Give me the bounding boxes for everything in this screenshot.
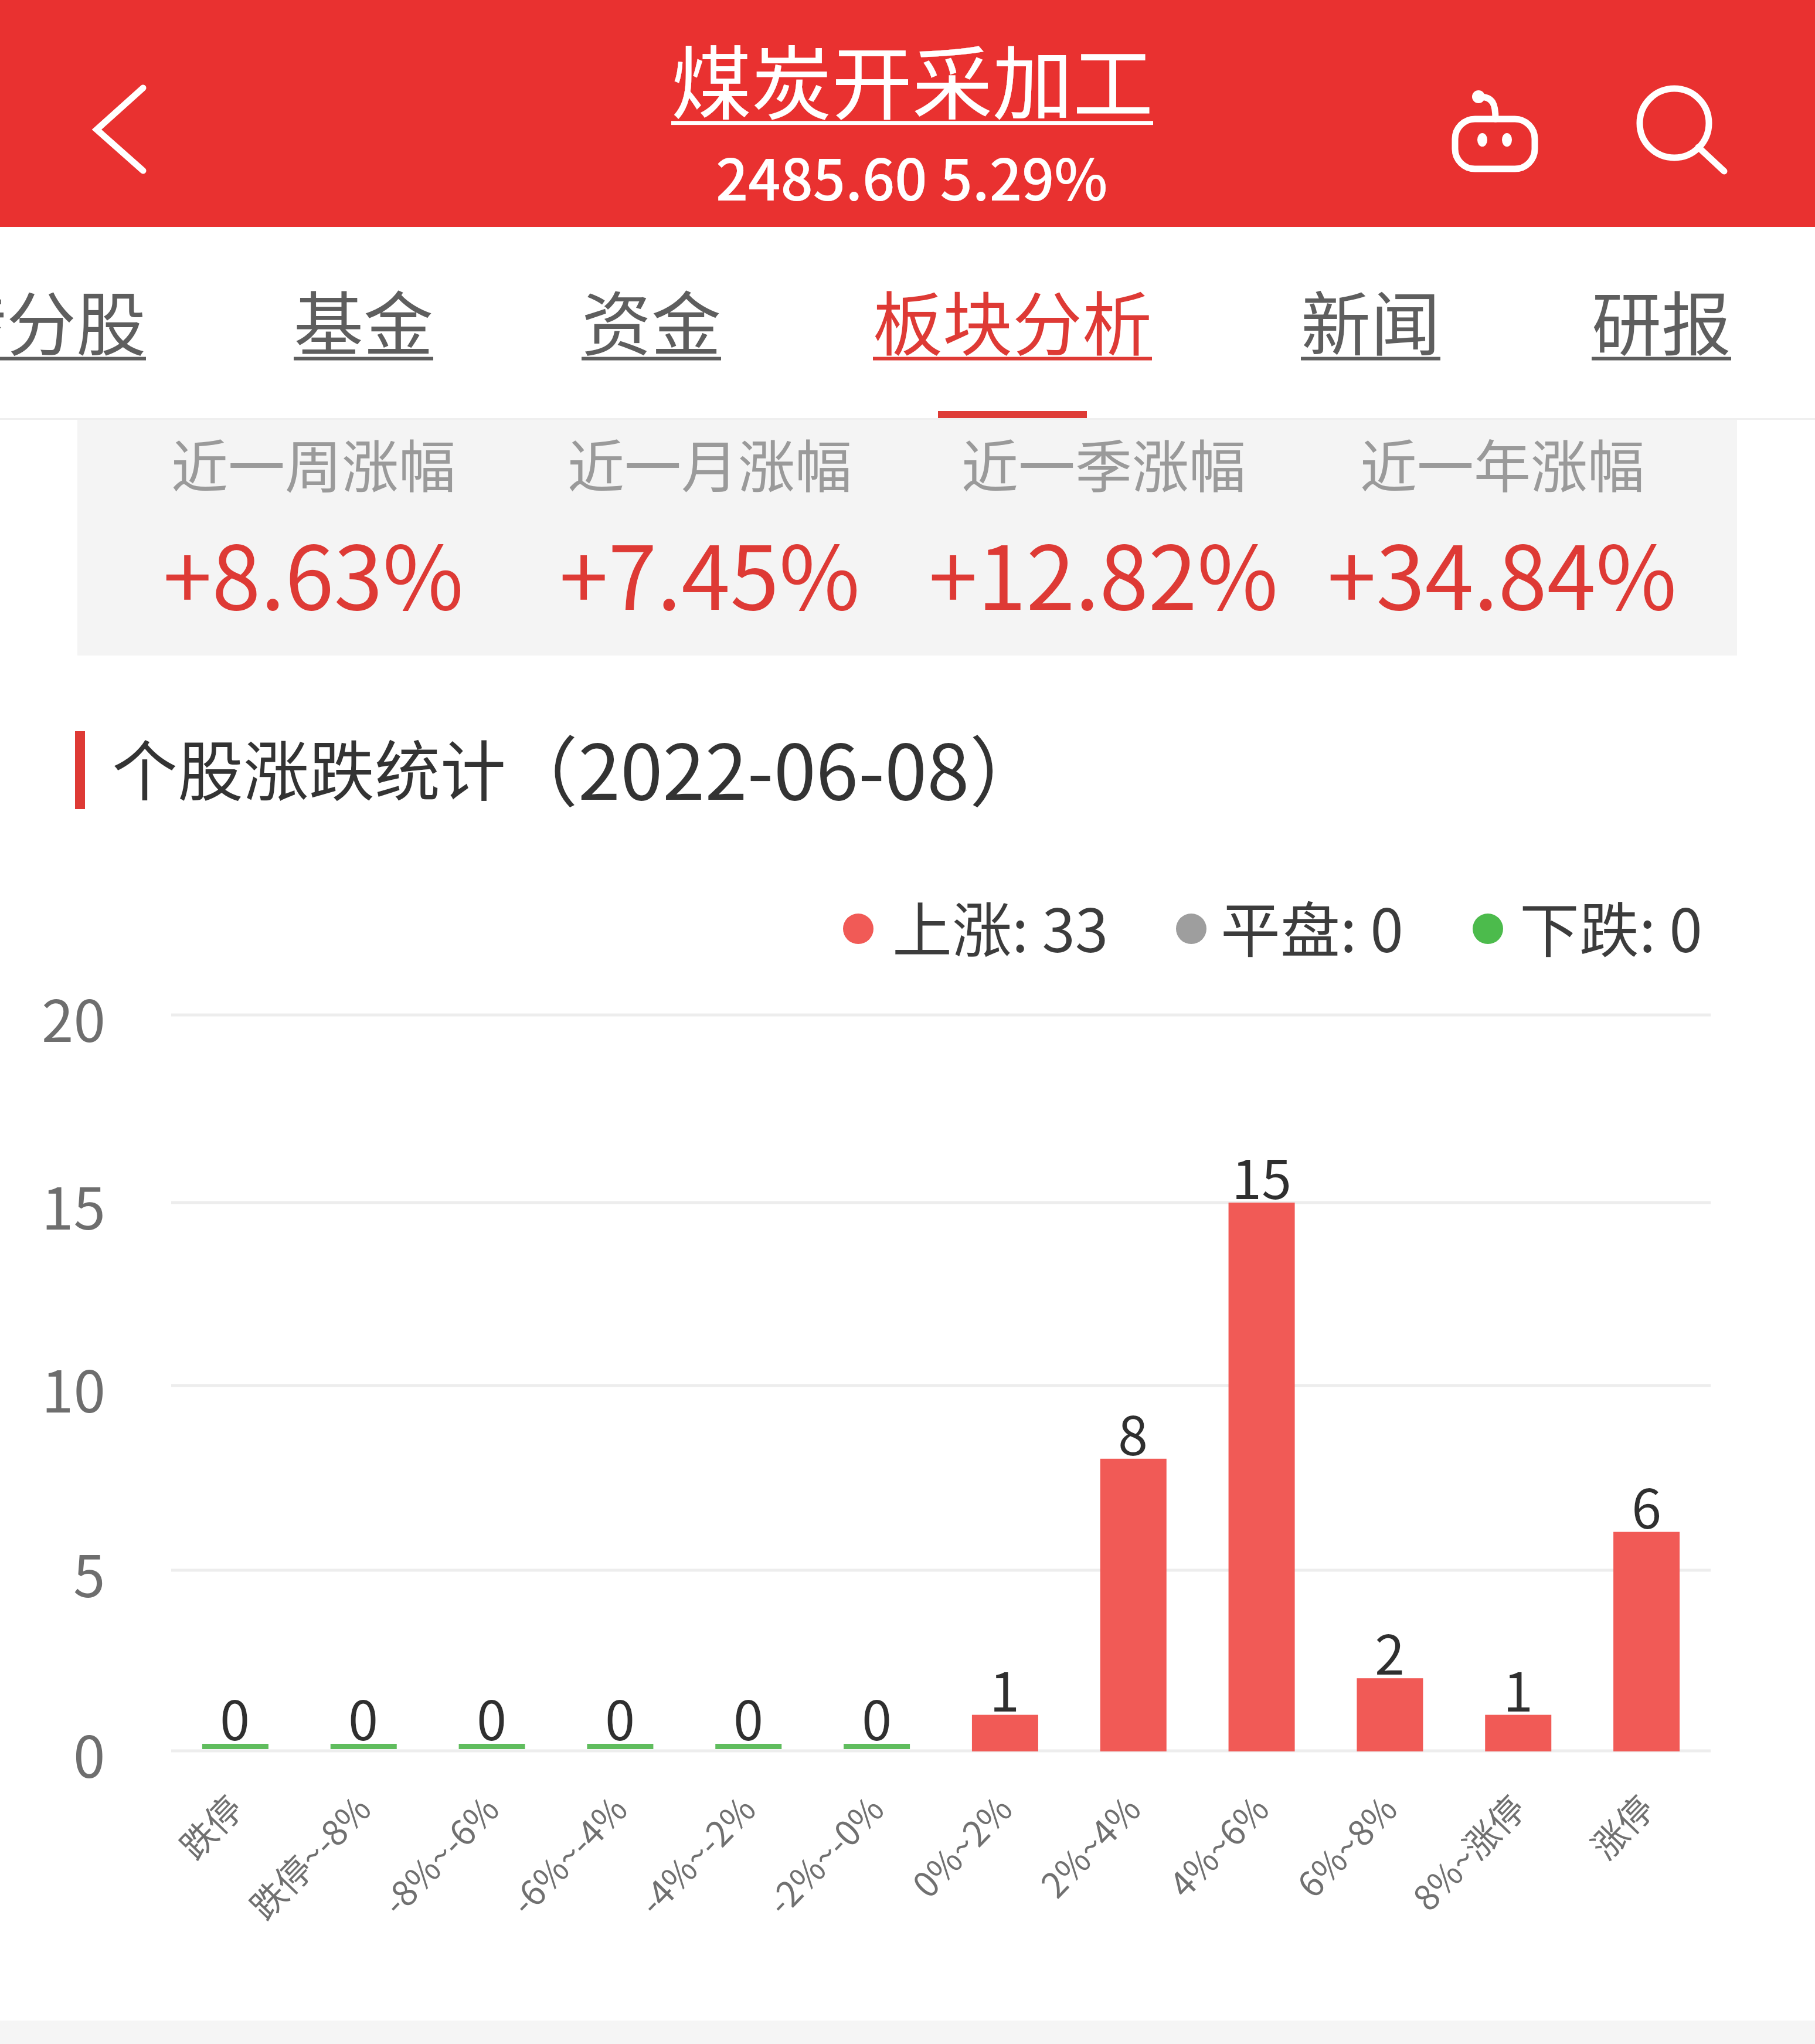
staticText: 1 xyxy=(990,1649,1020,1727)
staticText: 15 xyxy=(1232,1136,1292,1214)
staticText: 新闻 xyxy=(1301,269,1440,370)
button[interactable]: 新闻 xyxy=(1289,269,1453,422)
staticText: 0 xyxy=(605,1678,635,1756)
staticText: 近一年涨幅 xyxy=(1360,421,1644,503)
button[interactable]: AI assistant xyxy=(1439,76,1551,188)
staticText: （2022-06-08） xyxy=(502,711,1046,821)
staticText: +34.84% xyxy=(1327,508,1677,635)
button[interactable]: Back xyxy=(74,76,174,187)
staticText: 煤炭开采加工 xyxy=(671,20,1154,136)
staticText: +12.82% xyxy=(929,508,1279,635)
button[interactable]: Search xyxy=(1627,76,1738,188)
staticText: 0 xyxy=(220,1678,250,1756)
staticText: 2 xyxy=(1375,1612,1405,1690)
staticText: 上涨: 33 xyxy=(892,883,1109,970)
staticText: 个股涨跌统计 xyxy=(112,719,506,814)
staticText: 5 xyxy=(73,1530,106,1614)
staticText: 2485.60 5.29% xyxy=(716,134,1108,216)
staticText: 研报 xyxy=(1592,269,1731,370)
staticText: 0 xyxy=(348,1678,379,1756)
staticText: 下跌: 0 xyxy=(1520,883,1702,970)
staticText: 0 xyxy=(477,1678,507,1756)
staticText: 资金 xyxy=(582,269,721,370)
staticText: 0 xyxy=(73,1711,106,1794)
button[interactable]: 研报 xyxy=(1579,269,1743,422)
staticText: 基金 xyxy=(294,269,433,370)
staticText: 近一季涨幅 xyxy=(961,421,1246,503)
button[interactable]: 资金 xyxy=(569,269,733,422)
staticText: 15 xyxy=(42,1163,106,1246)
staticText: 0 xyxy=(862,1678,892,1756)
button[interactable]: 送转分股 xyxy=(0,269,171,422)
staticText: 近一周涨幅 xyxy=(171,421,456,503)
staticText: 1 xyxy=(1503,1649,1534,1727)
staticText: 6 xyxy=(1632,1466,1662,1544)
staticText: 板块分析 xyxy=(873,269,1152,370)
staticText: 20 xyxy=(42,975,106,1058)
staticText: 送转分股 xyxy=(0,269,146,370)
staticText: +7.45% xyxy=(559,508,860,635)
button[interactable]: 基金 xyxy=(281,269,446,422)
button[interactable]: 板块分析 xyxy=(848,269,1177,422)
staticText: 近一月涨幅 xyxy=(567,421,852,503)
staticText: 0 xyxy=(733,1678,764,1756)
staticText: 8 xyxy=(1118,1393,1148,1471)
staticText: 10 xyxy=(42,1346,106,1429)
staticText: 平盘: 0 xyxy=(1221,883,1403,970)
staticText: +8.63% xyxy=(163,508,464,635)
